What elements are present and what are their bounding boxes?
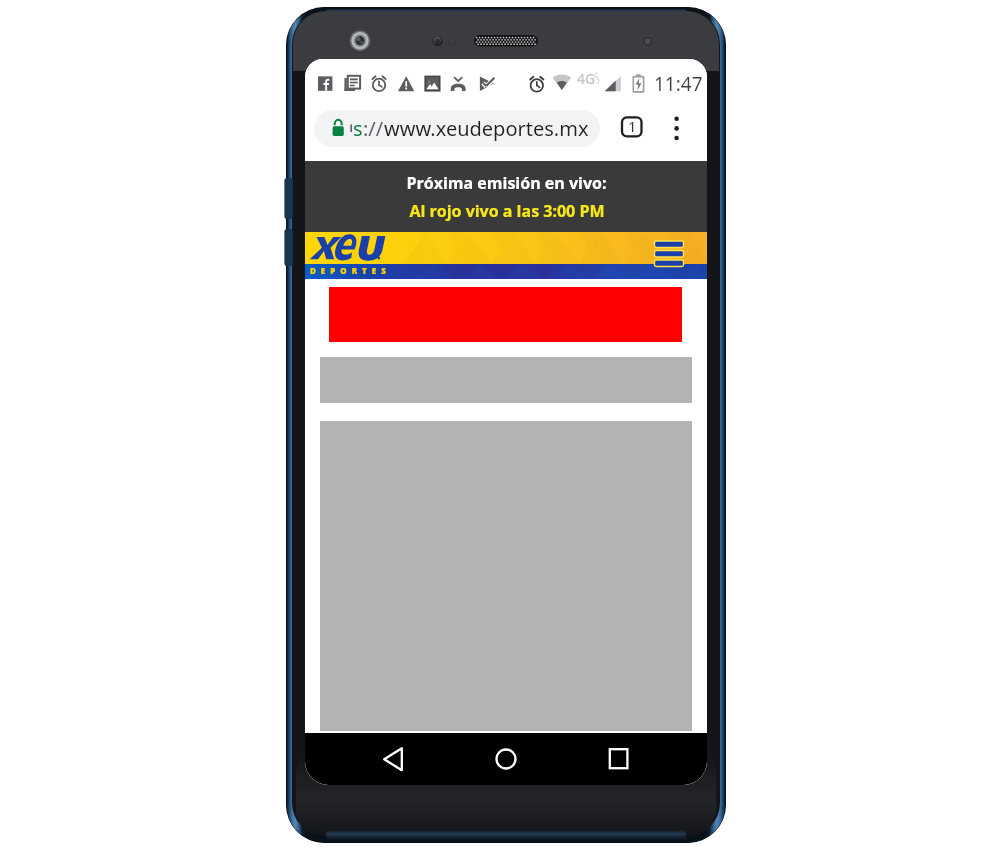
button[interactable]: Back: [370, 735, 418, 783]
button[interactable]: Recents: [595, 735, 643, 783]
button[interactable]: More options: [664, 110, 690, 147]
button[interactable]: s: [314, 110, 600, 147]
button[interactable]: Tabs: [616, 111, 646, 141]
staticText: 1: [628, 116, 637, 136]
button[interactable]: Menu: [649, 232, 691, 272]
staticText: Al rojo vivo a las 3:00 PM: [409, 200, 605, 222]
staticText: s: [353, 115, 363, 142]
staticText: ://: [363, 115, 384, 142]
staticText: DEPORTES: [310, 265, 391, 276]
staticText: 4G: [577, 69, 596, 88]
button[interactable]: Home: [482, 735, 530, 783]
staticText: Próxima emisión en vivo:: [406, 172, 607, 194]
staticText: www.xeudeportes.mx: [384, 115, 589, 142]
staticText: 11:47: [654, 71, 703, 97]
